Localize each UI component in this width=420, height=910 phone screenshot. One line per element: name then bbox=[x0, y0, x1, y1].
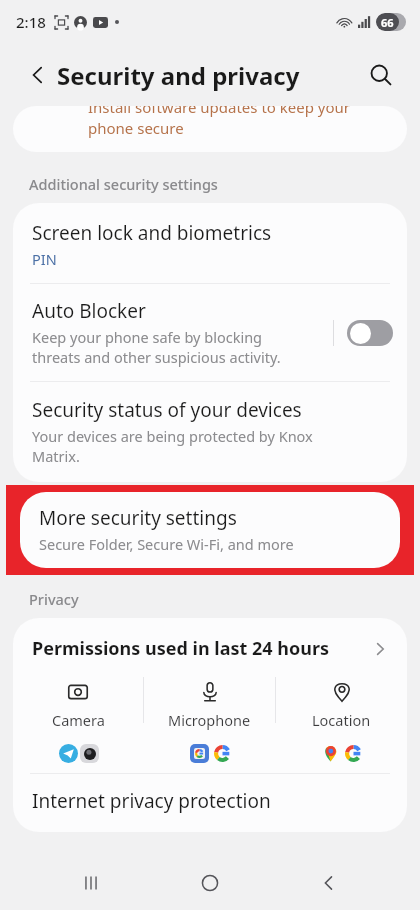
staticText: Location bbox=[312, 710, 371, 730]
staticText: Secure Folder, Secure Wi-Fi, and more bbox=[39, 534, 294, 554]
button[interactable]: Auto Blocker bbox=[13, 284, 407, 381]
staticText: Additional security settings bbox=[29, 174, 218, 194]
staticText: Internet privacy protection bbox=[32, 788, 271, 814]
staticText: PIN bbox=[32, 249, 57, 269]
button[interactable]: Screen lock and biometrics bbox=[13, 203, 407, 283]
button[interactable]: Auto Blocker toggle bbox=[347, 320, 393, 346]
staticText: phone secure bbox=[88, 118, 184, 138]
staticText: threats and other suspicious activity. bbox=[32, 347, 281, 367]
staticText: Privacy bbox=[29, 589, 79, 609]
staticText: Security status of your devices bbox=[32, 397, 302, 423]
staticText: Keep your phone safe by blocking bbox=[32, 327, 263, 347]
staticText: Camera bbox=[52, 710, 105, 730]
button[interactable]: Security status of your devices bbox=[13, 382, 407, 482]
button[interactable]: Install software updates to keep your bbox=[13, 106, 407, 152]
button[interactable]: Back bbox=[301, 856, 357, 910]
staticText: Microphone bbox=[168, 710, 251, 730]
button[interactable]: Microphone bbox=[144, 677, 275, 734]
button[interactable]: Home bbox=[182, 856, 238, 910]
staticText: 2:18 bbox=[16, 12, 46, 32]
button[interactable]: Location bbox=[276, 677, 407, 734]
button[interactable]: Recent apps bbox=[63, 856, 119, 910]
button[interactable]: Back bbox=[22, 59, 54, 91]
staticText: Matrix. bbox=[32, 446, 80, 466]
button[interactable]: Camera bbox=[13, 677, 143, 734]
staticText: More security settings bbox=[39, 505, 237, 531]
staticText: Security and privacy bbox=[57, 59, 300, 92]
staticText: Screen lock and biometrics bbox=[32, 220, 272, 246]
staticText: Permissions used in last 24 hours bbox=[32, 636, 372, 661]
staticText: Install software updates to keep your bbox=[88, 106, 351, 117]
staticText: Auto Blocker bbox=[32, 298, 146, 324]
button[interactable]: More security settings bbox=[20, 492, 400, 568]
button[interactable]: Permissions used in last 24 hours bbox=[13, 618, 407, 669]
staticText: Your devices are being protected by Knox bbox=[32, 426, 313, 446]
staticText: 66 bbox=[381, 15, 394, 30]
button[interactable]: Search bbox=[364, 58, 398, 92]
button[interactable]: Internet privacy protection bbox=[13, 774, 407, 832]
